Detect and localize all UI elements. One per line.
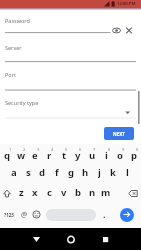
button[interactable]: b [71, 186, 85, 198]
staticText: i [105, 149, 108, 161]
staticText: 1 [9, 147, 12, 152]
button[interactable]: h [78, 166, 92, 178]
button[interactable]: y [71, 149, 85, 161]
staticText: q [4, 149, 11, 161]
staticText: d [39, 166, 46, 178]
button[interactable]: r [42, 149, 56, 161]
staticText: 6 [79, 147, 82, 152]
staticText: 12:00 PM [117, 1, 136, 7]
staticText: z [19, 186, 24, 198]
button[interactable]: c [42, 186, 56, 198]
button[interactable]: f [50, 166, 64, 178]
staticText: Server [5, 44, 22, 51]
button[interactable]: q [0, 149, 14, 161]
button[interactable] [5, 14, 136, 34]
staticText: @ [21, 210, 28, 220]
staticText: l [126, 166, 129, 178]
staticText: b [75, 186, 82, 198]
staticText: s [26, 166, 31, 178]
button[interactable]: . [99, 207, 109, 220]
button[interactable]: ?123 [1, 208, 16, 221]
staticText: j [98, 166, 101, 178]
button[interactable]: g [64, 166, 78, 178]
button[interactable] [5, 99, 136, 118]
staticText: t [62, 149, 67, 161]
staticText: n [89, 186, 96, 198]
staticText: o [117, 149, 123, 161]
button[interactable]: t [57, 149, 71, 161]
button[interactable]: l [120, 166, 134, 178]
staticText: Port [5, 71, 16, 78]
button[interactable]: s [21, 166, 35, 178]
button[interactable] [5, 43, 136, 62]
staticText: v [61, 186, 67, 198]
button[interactable]: a [7, 166, 21, 178]
button[interactable]: d [35, 166, 49, 178]
staticText: r [47, 149, 52, 161]
staticText: 3 [37, 147, 40, 152]
staticText: 0 [136, 147, 139, 152]
staticText: a [11, 166, 17, 178]
staticText: h [82, 166, 89, 178]
staticText: 2 [23, 147, 26, 152]
staticText: 8 [108, 147, 111, 152]
button[interactable]: k [106, 166, 120, 178]
button[interactable] [5, 71, 136, 90]
button[interactable]: i [99, 149, 113, 161]
button[interactable]: v [57, 186, 71, 198]
button[interactable]: @ [18, 208, 30, 221]
staticText: u [89, 149, 96, 161]
staticText: w [17, 149, 26, 161]
staticText: ?123 [4, 212, 14, 218]
button[interactable] [60, 230, 81, 249]
button[interactable]: o [113, 149, 127, 161]
staticText: e [32, 149, 38, 161]
staticText: NEXT [113, 131, 125, 137]
button[interactable]: m [99, 186, 113, 198]
button[interactable] [46, 209, 96, 221]
staticText: Password [5, 17, 30, 24]
button[interactable]: u [85, 149, 99, 161]
button[interactable]: e [28, 149, 42, 161]
staticText: y [75, 149, 81, 161]
staticText: 5 [65, 147, 68, 152]
button[interactable]: w [14, 149, 28, 161]
staticText: g [68, 166, 75, 178]
button[interactable]: NEXT [104, 127, 134, 140]
button[interactable] [120, 208, 134, 222]
staticText: f [55, 166, 59, 178]
button[interactable] [95, 230, 116, 249]
button[interactable] [26, 230, 47, 249]
staticText: . [103, 208, 106, 220]
button[interactable]: n [85, 186, 99, 198]
staticText: 7 [93, 147, 96, 152]
staticText: Security type [5, 99, 39, 106]
button[interactable]: j [92, 166, 106, 178]
button[interactable]: z [14, 186, 28, 198]
staticText: p [131, 149, 138, 161]
button[interactable]: x [28, 186, 42, 198]
staticText: k [110, 166, 116, 178]
button[interactable]: p [127, 149, 141, 161]
staticText: c [47, 186, 52, 198]
staticText: 9 [122, 147, 125, 152]
staticText: x [32, 186, 38, 198]
staticText: 4 [51, 147, 54, 152]
staticText: m [101, 186, 111, 198]
